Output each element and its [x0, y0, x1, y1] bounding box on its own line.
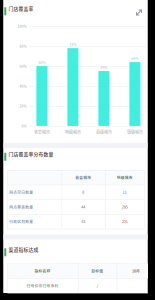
staticText: 78%	[69, 42, 76, 47]
staticText: 地级城市	[117, 175, 133, 180]
staticText: 231	[122, 219, 128, 224]
staticText: 门店覆盖率	[8, 5, 33, 12]
staticText: 网点空白数量	[9, 189, 33, 195]
staticText: 网点覆盖数量	[9, 204, 33, 209]
staticText: 镇级城市	[127, 129, 143, 135]
staticText: 80%	[19, 44, 26, 49]
staticText: 目标值	[91, 268, 103, 273]
staticText: 行政区划数量	[9, 219, 33, 224]
staticText: 20%	[19, 104, 26, 109]
staticText: 渠道指标达成	[8, 246, 38, 253]
staticText: 10月	[132, 268, 140, 273]
staticText: 0	[82, 189, 84, 195]
staticText: 地级城市	[65, 129, 81, 135]
staticText: 100%	[17, 24, 26, 29]
staticText: 40%	[19, 84, 26, 89]
staticText: 省会城市	[75, 175, 91, 180]
staticText: 0%	[21, 123, 26, 128]
staticText: 省会城市	[34, 129, 50, 135]
button[interactable]: 全屏	[133, 7, 144, 18]
staticText: /	[97, 283, 98, 288]
staticText: 33	[81, 219, 85, 224]
staticText: 11	[123, 189, 127, 195]
staticText: 60%	[19, 64, 26, 69]
staticText: 门店覆盖率分布数量	[8, 150, 53, 157]
staticText: 285	[122, 204, 128, 209]
staticText: 64%	[131, 56, 138, 61]
staticText: 指标名称	[35, 268, 51, 273]
staticText: 60%	[38, 60, 45, 65]
staticText: 县级城市	[96, 129, 112, 135]
staticText: 归母扣非归母净利	[27, 283, 59, 288]
staticText: 44	[81, 204, 85, 209]
staticText: 55%	[100, 65, 107, 70]
